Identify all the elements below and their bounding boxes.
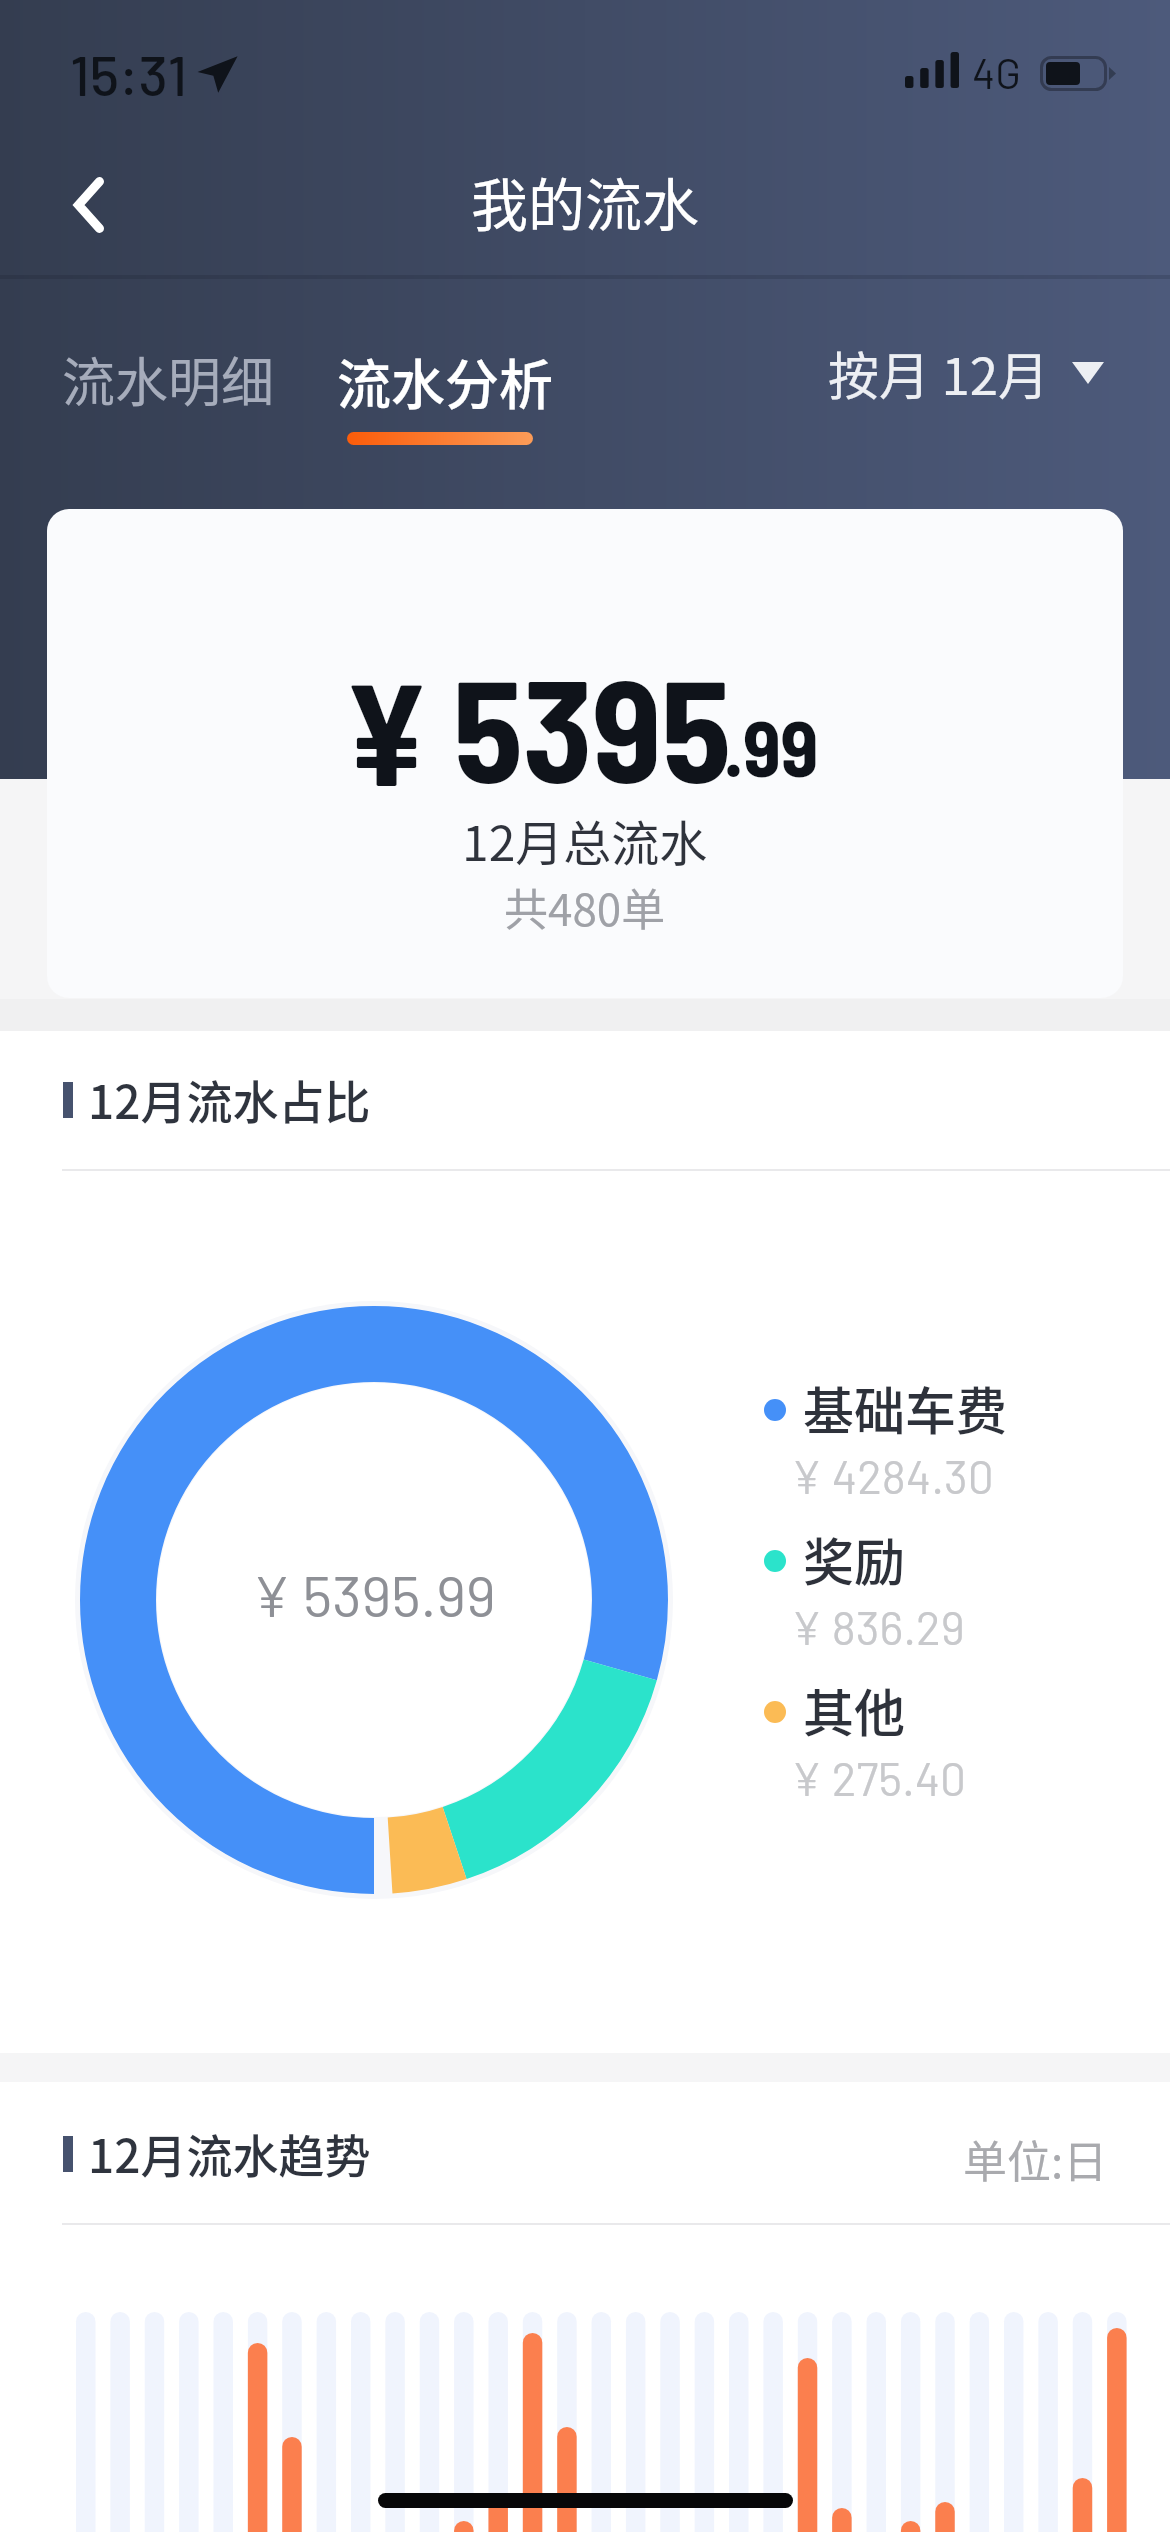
staticText: ¥ [343,643,430,815]
staticText: .99 [724,699,819,793]
staticText: ¥ 4284.30 [791,1448,994,1503]
staticText: 5395 [453,640,732,812]
button[interactable]: 流水分析 [325,322,565,452]
staticText: 流水明细 [62,341,274,418]
staticText: 单位:日 [963,2127,1108,2191]
staticText: 12月流水趋势 [88,2120,371,2187]
staticText: ¥ 275.40 [791,1750,967,1805]
staticText: 基础车费 [803,1371,1008,1445]
staticText: ¥ 836.29 [791,1599,965,1654]
staticText: 4G [972,47,1021,97]
button[interactable]: 流水明细 [44,325,292,433]
staticText: ¥ 5395.99 [74,1560,674,1628]
staticText: 12月流水占比 [88,1066,371,1133]
staticText: 15:31 [70,40,188,107]
staticText: 12月总流水 [462,805,708,875]
staticText: 奖励 [803,1522,906,1596]
button[interactable]: 按月 12月 [828,321,1104,425]
button[interactable]: Back [0,132,170,280]
staticText: 我的流水 [471,160,699,243]
staticText: 按月 12月 [828,336,1050,410]
staticText: 流水分析 [337,342,553,420]
staticText: 共480单 [504,875,666,939]
staticText: 其他 [803,1673,906,1747]
